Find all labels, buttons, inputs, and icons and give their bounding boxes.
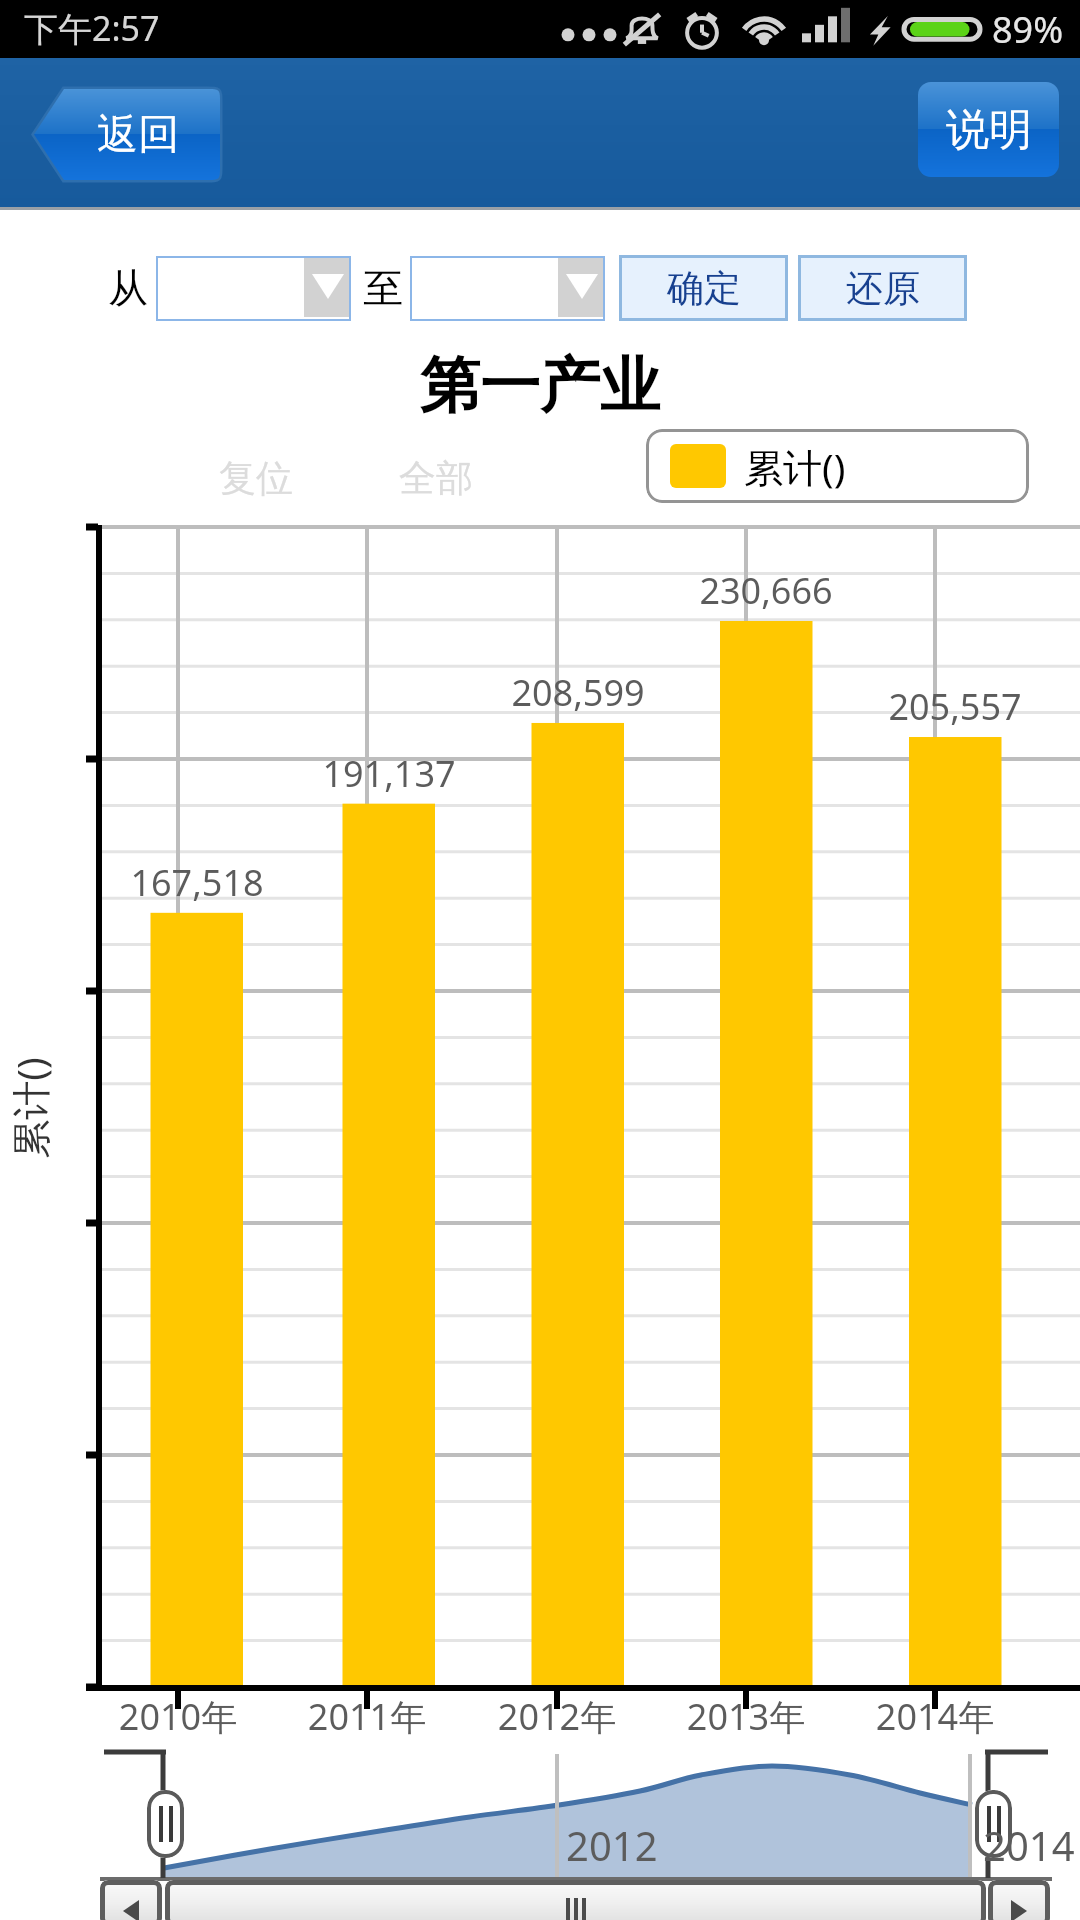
staticText: 从 [108, 263, 148, 313]
button[interactable]: 向右滚动 [988, 1880, 1050, 1920]
button[interactable]: 返回 [34, 89, 220, 180]
staticText: 205,557 [825, 682, 1080, 731]
button[interactable]: 选择年份 [156, 256, 351, 321]
staticText: 复位 [219, 455, 293, 502]
staticText: 确定 [667, 265, 741, 312]
staticText: 191,137 [259, 749, 519, 798]
staticText: 全部 [399, 455, 473, 502]
staticText: 返回 [97, 109, 179, 161]
staticText: 下午2:57 [24, 5, 160, 51]
staticText: 230,666 [636, 566, 896, 615]
staticText: 累计() [3, 1013, 56, 1203]
button[interactable]: 还原 [798, 255, 967, 321]
staticText: 2011年 [237, 1692, 497, 1741]
button[interactable]: 调整范围 [975, 1790, 1012, 1858]
staticText: 说明 [946, 103, 1032, 157]
staticText: 89% [992, 5, 1064, 54]
staticText: 2014 [983, 1818, 1075, 1872]
button[interactable]: 调整范围 [147, 1790, 184, 1858]
staticText: 至 [363, 263, 403, 313]
button[interactable]: 复位 [219, 455, 293, 502]
button[interactable]: 向左滚动 [100, 1880, 162, 1920]
staticText: 2014年 [805, 1692, 1065, 1741]
staticText: 累计() [744, 440, 846, 493]
button[interactable]: 选择年份 [410, 256, 605, 321]
staticText: 2013年 [616, 1692, 876, 1741]
staticText: 还原 [846, 265, 920, 312]
staticText: 208,599 [448, 668, 708, 717]
button[interactable]: 滚动条 [165, 1880, 986, 1920]
button[interactable]: 累计() [646, 429, 1029, 503]
staticText: 2010年 [48, 1692, 308, 1741]
button[interactable]: 确定 [619, 255, 788, 321]
staticText: 167,518 [67, 858, 327, 907]
staticText: 第一产业 [0, 348, 1080, 424]
staticText: 2012 [566, 1818, 658, 1872]
button[interactable]: 全部 [399, 455, 473, 502]
button[interactable]: 说明 [918, 82, 1059, 177]
staticText: 2012年 [427, 1692, 687, 1741]
